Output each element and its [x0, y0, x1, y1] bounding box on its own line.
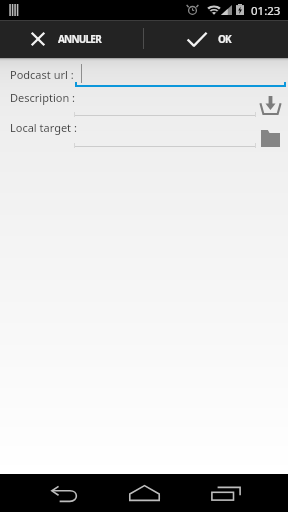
staticText: ANNULER	[58, 32, 101, 46]
button[interactable]: Local target field	[74, 125, 256, 147]
button[interactable]: OK	[144, 20, 288, 58]
button[interactable]: Recent apps	[198, 474, 252, 512]
staticText: Local target :	[10, 120, 77, 135]
button[interactable]: Download	[256, 91, 284, 119]
button[interactable]: Choose folder	[256, 124, 284, 152]
button[interactable]: ANNULER	[0, 20, 143, 58]
button[interactable]: Back	[37, 474, 91, 512]
staticText: Description :	[10, 90, 75, 105]
staticText: 01:23	[251, 3, 281, 19]
button[interactable]: Podcast url field	[75, 62, 286, 87]
staticText: OK	[218, 32, 231, 46]
button[interactable]: Home	[117, 474, 171, 512]
staticText: Podcast url :	[10, 67, 74, 82]
button[interactable]: Description field	[74, 94, 256, 116]
